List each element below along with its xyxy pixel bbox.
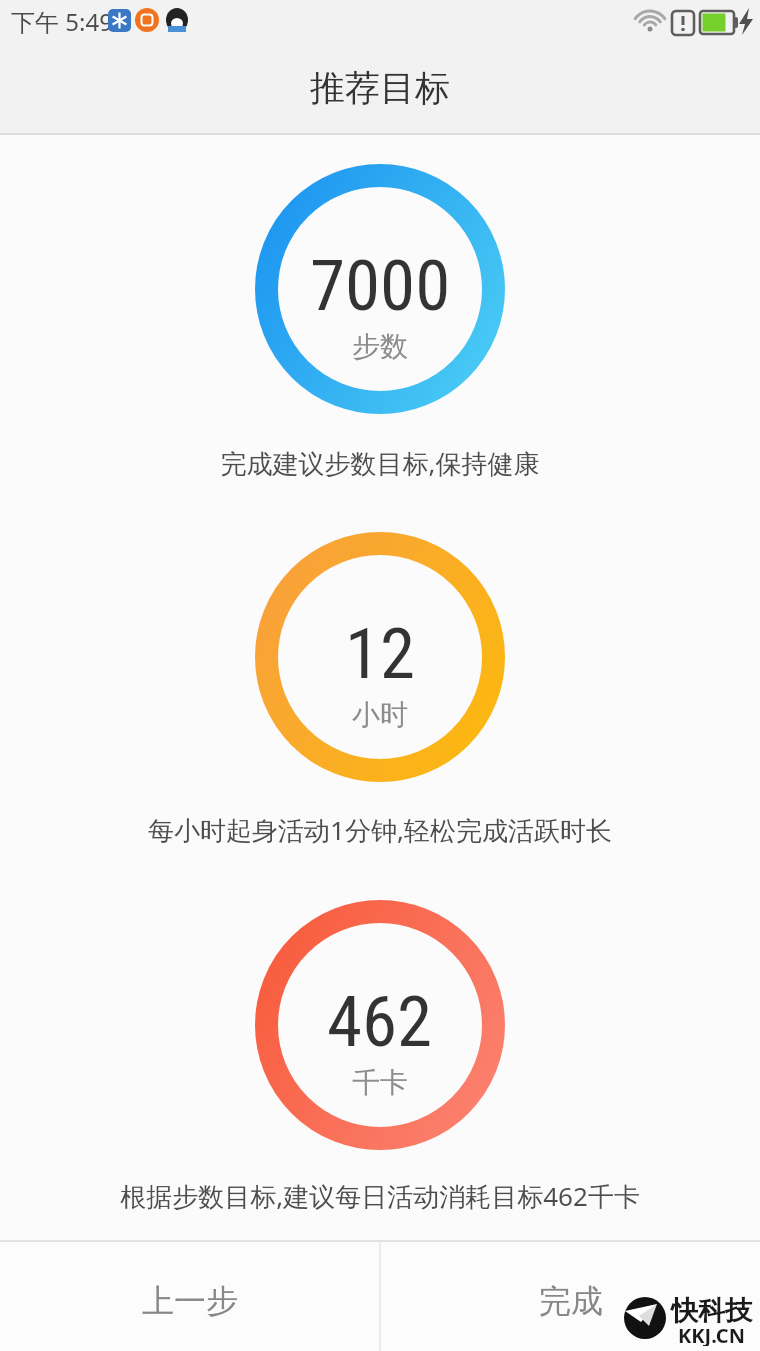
staticText: 12 [345, 612, 416, 695]
staticText: 根据步数目标,建议每日活动消耗目标462千卡 [0, 1178, 760, 1214]
staticText: 推荐目标 [310, 66, 450, 110]
staticText: 完成建议步数目标,保持健康 [0, 445, 760, 481]
staticText: 下午 5:49 [11, 5, 113, 38]
staticText: 每小时起身活动1分钟,轻松完成活跃时长 [0, 812, 760, 848]
button[interactable]: 完成 [381, 1242, 760, 1351]
staticText: 步数 [352, 329, 408, 364]
staticText: 462 [327, 980, 433, 1063]
staticText: 完成 [539, 1281, 603, 1321]
staticText: 小时 [352, 697, 408, 732]
staticText: 上一步 [142, 1281, 238, 1321]
staticText: KKJ.CN [678, 1322, 745, 1346]
staticText: 千卡 [352, 1065, 408, 1100]
staticText: 快科技 [671, 1294, 752, 1328]
button[interactable]: 上一步 [0, 1242, 379, 1351]
staticText: 7000 [310, 244, 451, 327]
